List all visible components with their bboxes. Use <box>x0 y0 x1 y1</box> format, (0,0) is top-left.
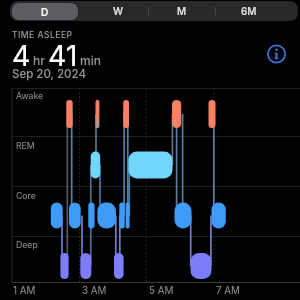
button[interactable]: W <box>85 2 151 20</box>
staticText: min <box>80 53 101 68</box>
staticText: Core <box>16 191 36 202</box>
staticText: Deep <box>16 240 38 251</box>
staticText: Sep 20, 2024 <box>12 67 86 81</box>
staticText: 41 <box>48 38 78 72</box>
button[interactable]: 6M <box>216 2 282 20</box>
staticText: W <box>113 5 124 17</box>
staticText: 4 <box>12 38 31 72</box>
button[interactable]: M <box>149 2 215 20</box>
staticText: D <box>41 6 49 18</box>
button[interactable] <box>266 43 288 65</box>
staticText: TIME ASLEEP <box>12 30 73 40</box>
staticText: 3 AM <box>82 285 107 297</box>
staticText: REM <box>16 141 35 152</box>
staticText: 1 AM <box>13 285 36 297</box>
staticText: 7 AM <box>216 285 240 297</box>
staticText: M <box>177 5 187 17</box>
staticText: 5 AM <box>149 285 174 297</box>
staticText: Awake <box>16 91 44 102</box>
staticText: hr <box>33 53 45 68</box>
button[interactable]: D <box>12 3 78 20</box>
staticText: 6M <box>241 5 257 17</box>
